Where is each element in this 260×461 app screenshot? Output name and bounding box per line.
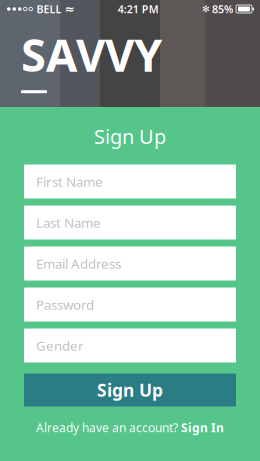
staticText: Sign Up <box>94 123 166 150</box>
staticText: BELL <box>36 2 61 16</box>
staticText: Email Address <box>36 255 121 272</box>
button[interactable]: Sign Up <box>24 374 236 407</box>
staticText: Sign Up <box>97 379 163 402</box>
staticText: SAVVY <box>21 24 162 84</box>
staticText: Gender <box>36 337 84 354</box>
staticText: 85% <box>212 2 233 16</box>
staticText: ≈ <box>64 2 74 16</box>
staticText: ✻ <box>202 4 210 14</box>
staticText: Sign In <box>181 420 224 435</box>
staticText: First Name <box>36 173 103 190</box>
staticText: Password <box>36 296 94 313</box>
button[interactable]: Already have an account? <box>24 417 236 439</box>
staticText: Last Name <box>36 214 101 231</box>
staticText: 4:21 PM <box>118 2 159 16</box>
staticText: Already have an account? <box>36 420 178 435</box>
